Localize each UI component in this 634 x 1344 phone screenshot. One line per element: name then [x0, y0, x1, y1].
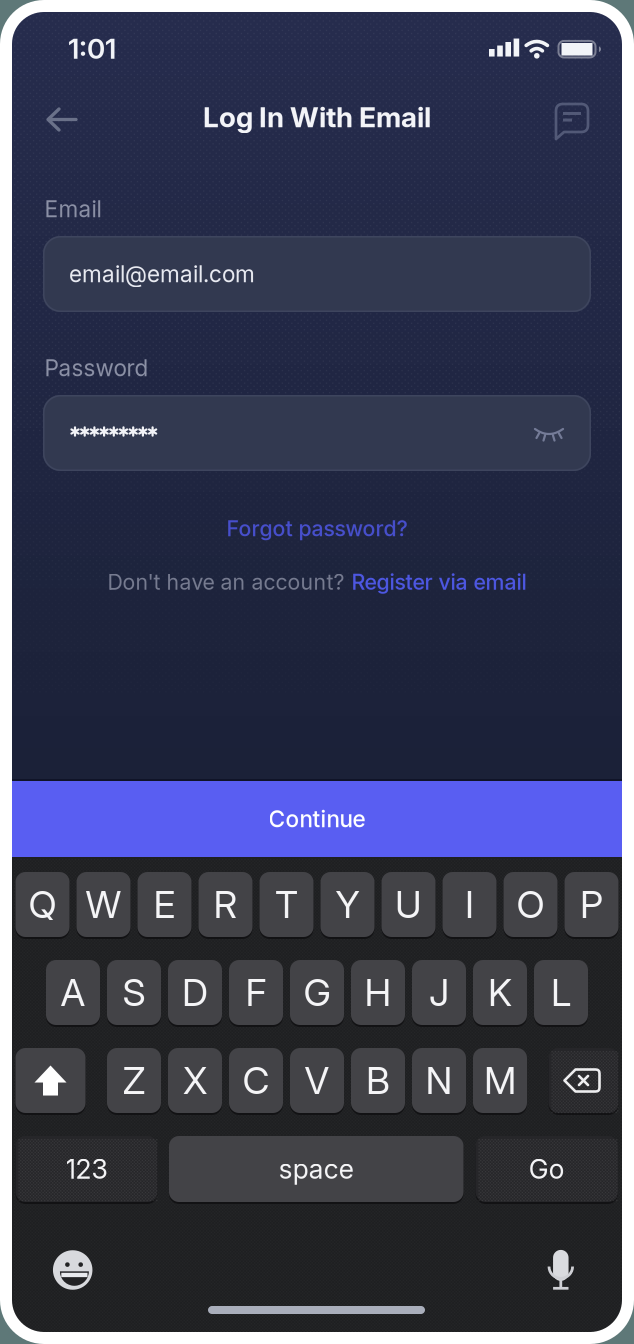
button[interactable]: G: [290, 960, 344, 1025]
staticText: D: [182, 970, 208, 1014]
button[interactable]: Continue: [12, 781, 622, 857]
staticText: M: [484, 1058, 516, 1102]
button[interactable]: P: [564, 872, 618, 937]
button[interactable]: Go: [475, 1136, 618, 1202]
button[interactable]: N: [412, 1048, 466, 1113]
button[interactable]: Support chat: [550, 97, 594, 143]
staticText: Log In With Email: [203, 100, 431, 133]
button[interactable]: Dictate: [539, 1240, 583, 1296]
staticText: C: [242, 1058, 269, 1102]
staticText: F: [245, 970, 266, 1014]
button[interactable]: Z: [107, 1048, 161, 1113]
button[interactable]: C: [229, 1048, 283, 1113]
button[interactable]: Y: [320, 872, 374, 937]
button[interactable]: O: [503, 872, 557, 937]
staticText: 123: [65, 1153, 107, 1185]
button[interactable]: Shift: [15, 1048, 85, 1113]
staticText: X: [183, 1058, 207, 1102]
button[interactable]: W: [76, 872, 130, 937]
button[interactable]: J: [412, 960, 466, 1025]
button[interactable]: 123: [15, 1136, 157, 1202]
button[interactable]: F: [229, 960, 283, 1025]
staticText: Y: [335, 882, 359, 926]
staticText: S: [122, 970, 145, 1014]
button[interactable]: H: [351, 960, 405, 1025]
button[interactable]: X: [168, 1048, 222, 1113]
staticText: email@email.com: [69, 261, 255, 287]
button[interactable]: Show password: [527, 417, 571, 451]
staticText: Q: [28, 882, 56, 926]
button[interactable]: Q: [15, 872, 69, 937]
staticText: Forgot password?: [226, 516, 407, 541]
staticText: U: [395, 882, 422, 926]
staticText: K: [488, 970, 512, 1014]
staticText: W: [85, 882, 121, 926]
staticText: space: [279, 1153, 354, 1185]
button[interactable]: M: [473, 1048, 527, 1113]
staticText: E: [153, 882, 175, 926]
staticText: L: [551, 970, 571, 1014]
button[interactable]: A: [46, 960, 100, 1025]
staticText: P: [580, 882, 603, 926]
staticText: T: [275, 882, 298, 926]
staticText: Email: [44, 196, 101, 222]
staticText: Continue: [268, 806, 365, 832]
button[interactable]: Forgot password?: [218, 516, 415, 541]
button[interactable]: Delete: [548, 1048, 618, 1113]
staticText: B: [366, 1058, 390, 1102]
staticText: J: [429, 970, 449, 1014]
button[interactable]: Emoji: [49, 1246, 97, 1294]
button[interactable]: Don't have an account?: [107, 569, 526, 595]
button[interactable]: L: [534, 960, 588, 1025]
staticText: I: [465, 882, 474, 926]
staticText: O: [516, 882, 544, 926]
button[interactable]: R: [198, 872, 252, 937]
staticText: Register via email: [351, 569, 526, 595]
button[interactable]: Back: [40, 97, 84, 141]
button[interactable]: D: [168, 960, 222, 1025]
staticText: V: [304, 1058, 329, 1102]
button[interactable]: U: [381, 872, 435, 937]
staticText: A: [60, 970, 85, 1014]
button[interactable]: S: [107, 960, 161, 1025]
staticText: Go: [529, 1153, 565, 1185]
staticText: Don't have an account?: [107, 569, 344, 595]
staticText: R: [213, 882, 237, 926]
staticText: G: [303, 970, 330, 1014]
staticText: 1:01: [68, 32, 116, 65]
staticText: N: [425, 1058, 452, 1102]
button[interactable]: K: [473, 960, 527, 1025]
button[interactable]: T: [259, 872, 313, 937]
staticText: H: [364, 970, 391, 1014]
staticText: Z: [122, 1058, 145, 1102]
staticText: Password: [44, 355, 148, 381]
button[interactable]: B: [351, 1048, 405, 1113]
button[interactable]: space: [169, 1136, 463, 1202]
button[interactable]: I: [442, 872, 496, 937]
button[interactable]: V: [290, 1048, 344, 1113]
button[interactable]: E: [137, 872, 191, 937]
